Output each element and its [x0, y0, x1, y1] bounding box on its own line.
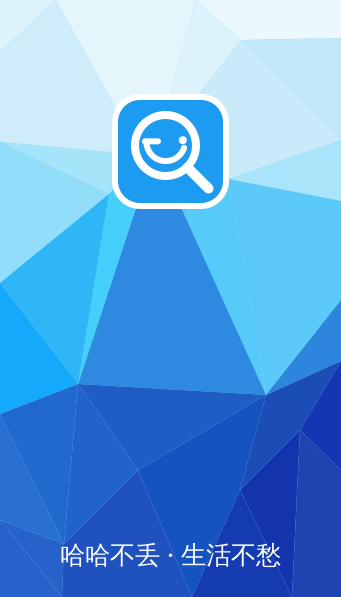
staticText: 哈哈不丢 · 生活不愁 — [60, 537, 281, 571]
